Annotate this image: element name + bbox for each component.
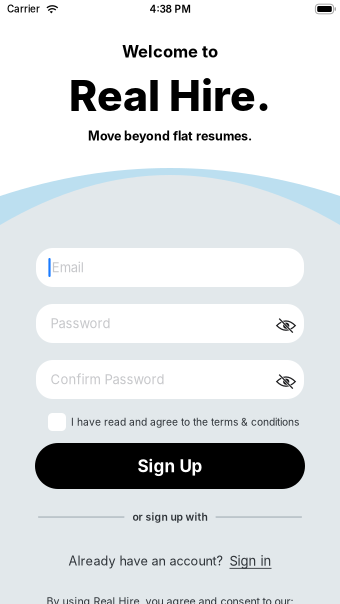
staticText: Confirm Password bbox=[51, 372, 165, 387]
staticText: Sign Up bbox=[137, 456, 202, 476]
staticText: Welcome to bbox=[122, 41, 218, 62]
staticText: I have read and agree to the terms & con… bbox=[71, 416, 299, 428]
staticText: 4:38 PM bbox=[149, 3, 190, 15]
button[interactable]: Show password bbox=[264, 304, 296, 343]
staticText: Move beyond flat resumes. bbox=[88, 128, 252, 143]
button[interactable]: Show password bbox=[264, 360, 296, 399]
button[interactable]: I have read and agree to the terms & con… bbox=[0, 412, 340, 432]
staticText: Already have an account? bbox=[68, 553, 222, 568]
staticText: Sign in bbox=[229, 553, 271, 569]
button[interactable]: Sign Up bbox=[35, 443, 305, 489]
staticText: Real Hire. bbox=[69, 70, 271, 121]
button[interactable]: Sign in bbox=[229, 553, 271, 569]
staticText: or sign up with bbox=[132, 511, 207, 523]
staticText: Carrier bbox=[7, 3, 40, 15]
staticText: Email bbox=[52, 260, 84, 275]
staticText: Password bbox=[51, 316, 111, 331]
staticText: By using Real Hire, you agree and consen… bbox=[46, 595, 293, 604]
